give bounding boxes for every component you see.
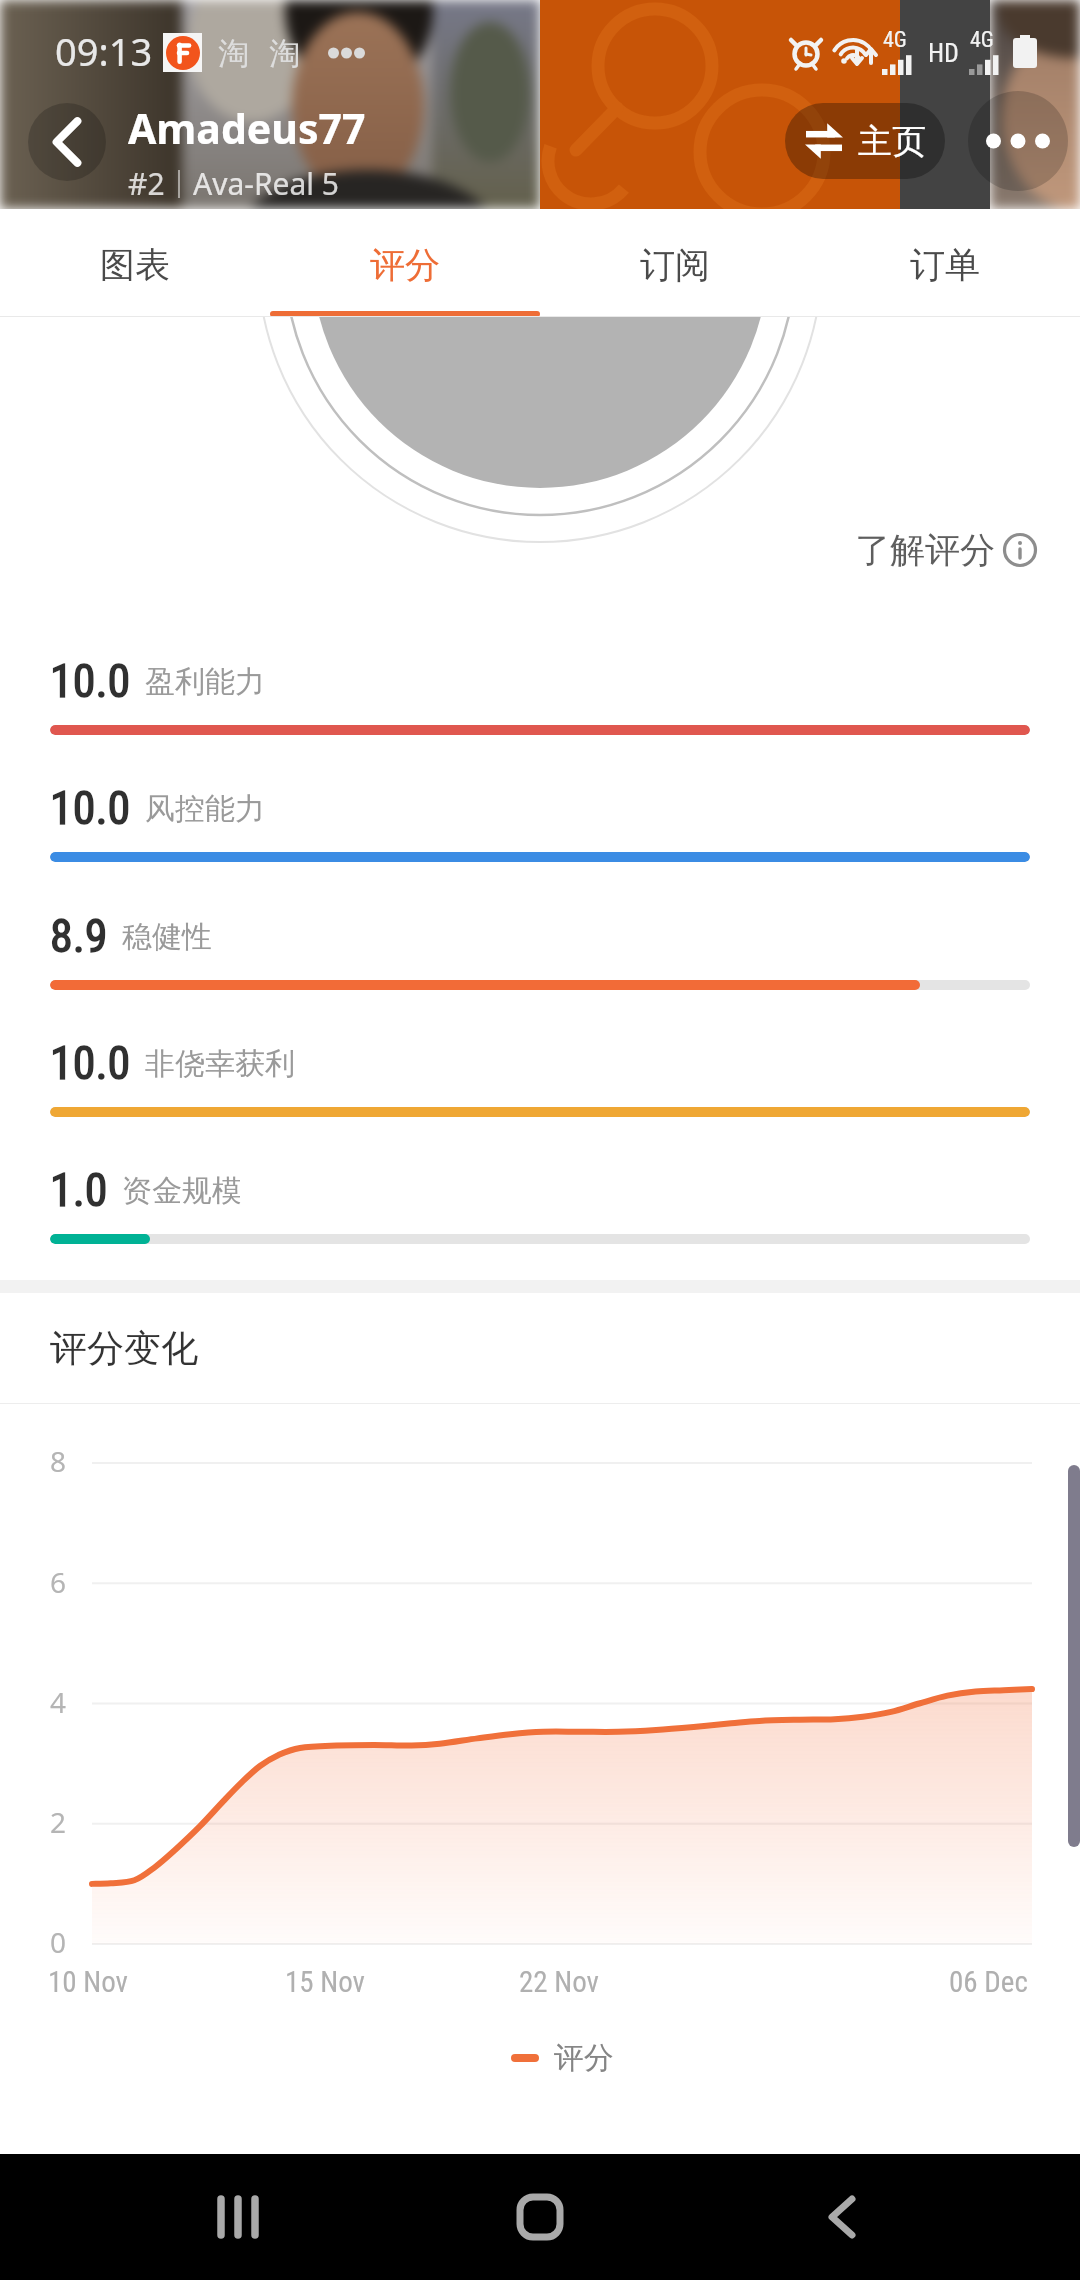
staticText: 评分 xyxy=(554,2039,614,2077)
button[interactable]: 订单 xyxy=(810,209,1080,317)
staticText: 风控能力 xyxy=(145,790,265,828)
button[interactable] xyxy=(0,635,1080,762)
staticText: 2 xyxy=(50,1803,67,1841)
button[interactable]: 图表 xyxy=(0,209,270,317)
button[interactable] xyxy=(0,1144,1080,1271)
staticText: 1.0 xyxy=(50,1163,108,1217)
staticText: 淘 xyxy=(269,34,300,73)
button[interactable] xyxy=(0,890,1080,1017)
staticText: Amadeus77 xyxy=(128,100,366,156)
staticText: #2 xyxy=(128,163,165,204)
staticText: 22 Nov xyxy=(519,1965,600,1999)
staticText: 15 Nov xyxy=(285,1965,366,1999)
staticText: 10.0 xyxy=(50,781,131,835)
button[interactable]: 了解评分 xyxy=(855,525,1037,575)
staticText: 09:13 xyxy=(55,25,153,77)
button[interactable]: Back xyxy=(782,2154,902,2280)
staticText: 评分 xyxy=(370,243,440,287)
button[interactable]: Recents xyxy=(178,2154,298,2280)
staticText: 8.9 xyxy=(50,909,108,963)
staticText: 盈利能力 xyxy=(145,663,265,701)
staticText: 4 xyxy=(50,1683,67,1721)
staticText: 订阅 xyxy=(640,243,710,287)
button[interactable] xyxy=(0,1017,1080,1144)
staticText: 10 Nov xyxy=(48,1965,129,1999)
staticText: 8 xyxy=(50,1442,67,1480)
staticText: 06 Dec xyxy=(949,1965,1028,1999)
staticText: 了解评分 xyxy=(855,528,995,572)
staticText: 淘 xyxy=(218,34,249,73)
staticText: 资金规模 xyxy=(122,1172,242,1210)
staticText: 非侥幸获利 xyxy=(145,1045,295,1083)
staticText: 稳健性 xyxy=(122,918,212,956)
button[interactable]: Home xyxy=(480,2154,600,2280)
staticText: 订单 xyxy=(910,243,980,287)
staticText: 4G xyxy=(970,27,994,53)
staticText: 10.0 xyxy=(50,654,131,708)
staticText: 评分变化 xyxy=(50,1325,198,1372)
staticText: 6 xyxy=(50,1563,67,1601)
staticText: Ava-Real 5 xyxy=(193,163,340,204)
button[interactable]: 订阅 xyxy=(540,209,810,317)
staticText: 主页 xyxy=(858,120,926,163)
staticText: 图表 xyxy=(100,243,170,287)
staticText: 0 xyxy=(50,1923,67,1961)
button[interactable] xyxy=(0,762,1080,889)
staticText: HD xyxy=(928,38,959,68)
button[interactable]: Back xyxy=(28,103,106,181)
button[interactable]: 主页 xyxy=(785,103,945,179)
button[interactable]: More options xyxy=(968,91,1068,191)
button[interactable]: 评分 xyxy=(270,209,540,317)
staticText: 4G xyxy=(883,27,907,53)
staticText: 10.0 xyxy=(50,1036,131,1090)
